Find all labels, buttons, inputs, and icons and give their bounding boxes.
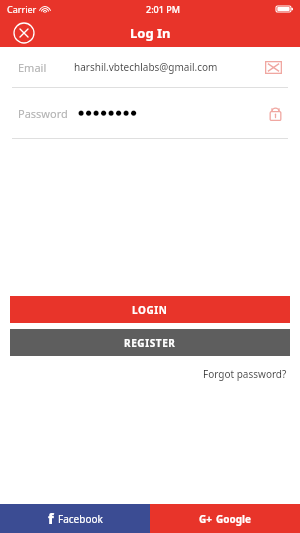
button[interactable]: Forgot password? xyxy=(203,367,287,381)
staticText: Google xyxy=(216,512,252,526)
button[interactable]: Close xyxy=(13,22,35,44)
other: Email xyxy=(265,61,282,74)
button[interactable]: Password xyxy=(0,88,300,138)
button[interactable]: f xyxy=(0,504,150,533)
button[interactable]: LOGIN xyxy=(10,296,290,323)
staticText: G+ xyxy=(199,512,212,526)
staticText: Password xyxy=(18,106,68,121)
staticText: ●●●●●●●● xyxy=(78,109,139,117)
other: Password xyxy=(269,105,282,121)
staticText: Carrier xyxy=(7,3,37,15)
staticText: Forgot password? xyxy=(203,367,287,381)
staticText: Facebook xyxy=(58,512,103,526)
button[interactable]: G+ xyxy=(150,504,300,533)
staticText: 2:01 PM xyxy=(146,3,180,15)
staticText: LOGIN xyxy=(132,303,168,317)
staticText: Email xyxy=(18,60,47,75)
button[interactable]: REGISTER xyxy=(10,329,290,356)
staticText: Log In xyxy=(130,24,171,42)
button[interactable]: Email xyxy=(0,47,300,87)
staticText: REGISTER xyxy=(124,336,176,350)
staticText: harshil.vbtechlabs@gmail.com xyxy=(74,60,218,74)
staticText: f xyxy=(48,509,54,528)
